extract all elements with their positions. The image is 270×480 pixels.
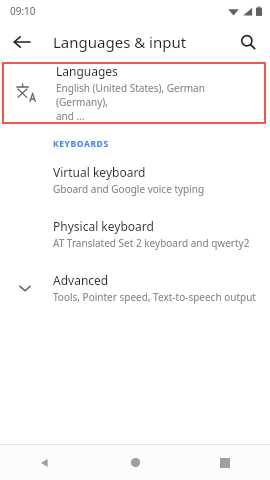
button[interactable]: Back <box>6 26 38 58</box>
staticText: Advanced <box>53 272 109 288</box>
staticText: Virtual keyboard <box>53 164 146 180</box>
button[interactable]: Physical keyboard <box>0 218 270 250</box>
button[interactable]: Search <box>232 26 264 58</box>
button[interactable]: Back <box>0 445 90 480</box>
button[interactable]: Recent apps <box>180 445 270 480</box>
button[interactable]: Languages <box>2 62 266 124</box>
staticText: Languages <box>56 63 118 79</box>
staticText: Physical keyboard <box>53 218 154 234</box>
staticText: Languages & input <box>53 32 187 52</box>
button[interactable]: Virtual keyboard <box>0 164 270 196</box>
staticText: Gboard and Google voice typing <box>53 182 205 196</box>
staticText: English (United States), German (Germany… <box>56 81 258 109</box>
staticText: KEYBOARDS <box>53 138 109 150</box>
button[interactable]: Advanced <box>0 272 270 304</box>
staticText: AT Translated Set 2 keyboard and qwerty2 <box>53 236 250 250</box>
staticText: Tools, Pointer speed, Text-to-speech out… <box>53 290 256 304</box>
staticText: 09:10 <box>10 4 36 18</box>
button[interactable]: Home <box>90 445 180 480</box>
staticText: and … <box>56 109 85 123</box>
